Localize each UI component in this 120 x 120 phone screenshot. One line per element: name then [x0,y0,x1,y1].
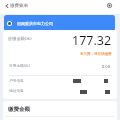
staticText: 地址信息 [9,88,24,93]
staticText: 有欠费，请尽快缴费 [80,52,112,56]
button[interactable]: 国网重庆市电力公司 [4,15,115,31]
staticText: 0.00 [102,64,110,69]
staticText: 可用余额(元) [9,63,30,68]
button[interactable]: Customer service [104,0,115,11]
staticText: 国网重庆市电力公司 [17,21,53,26]
staticText: 177.32 [72,32,112,49]
staticText: 应缴金额(元) [8,36,32,42]
staticText: 户号信息 [9,78,24,83]
staticText: 缴费账单 [10,3,29,9]
button[interactable]: Back [1,0,12,12]
staticText: 缴费金额 [8,106,30,113]
